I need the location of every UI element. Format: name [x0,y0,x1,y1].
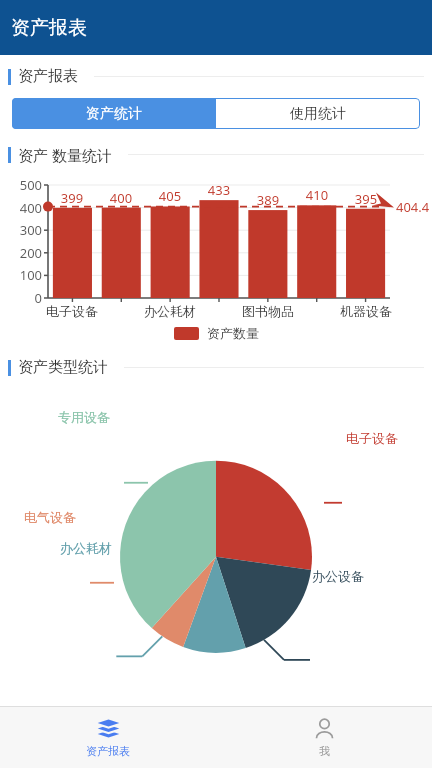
staticText: 办公耗材 [60,540,126,556]
staticText: 410 [293,186,341,204]
staticText: 办公耗材 [135,303,205,319]
staticText: 0 [6,289,42,307]
button[interactable]: 资产报表 [0,707,216,768]
staticText: 资产 数量统计 [18,145,112,165]
staticText: 电子设备 [346,430,412,446]
staticText: 433 [195,181,243,199]
staticText: 电子设备 [37,303,107,319]
staticText: 专用设备 [58,409,124,425]
staticText: 399 [48,189,96,207]
staticText: 资产数量 [207,325,259,341]
staticText: 资产类型统计 [18,358,108,377]
staticText: 300 [6,221,42,239]
staticText: 389 [244,191,292,209]
staticText: 使用统计 [290,105,346,123]
button[interactable]: 使用统计 [216,98,420,129]
staticText: 图书物品 [233,303,303,319]
staticText: 办公设备 [312,568,378,584]
staticText: 资产报表 [18,67,78,86]
button[interactable]: 资产统计 [12,98,216,129]
staticText: 我 [319,744,330,758]
staticText: 200 [6,244,42,262]
staticText: 400 [97,189,145,207]
staticText: 500 [6,176,42,194]
staticText: 机器设备 [331,303,401,319]
button[interactable]: 我 [216,707,432,768]
staticText: 400 [6,199,42,217]
staticText: 资产报表 [11,16,87,40]
staticText: 395 [342,190,390,208]
staticText: 405 [146,187,194,205]
staticText: 404.4 [396,198,432,216]
staticText: 资产统计 [86,105,142,123]
staticText: 100 [6,266,42,284]
staticText: 资产报表 [86,744,130,758]
staticText: 电气设备 [24,509,90,525]
